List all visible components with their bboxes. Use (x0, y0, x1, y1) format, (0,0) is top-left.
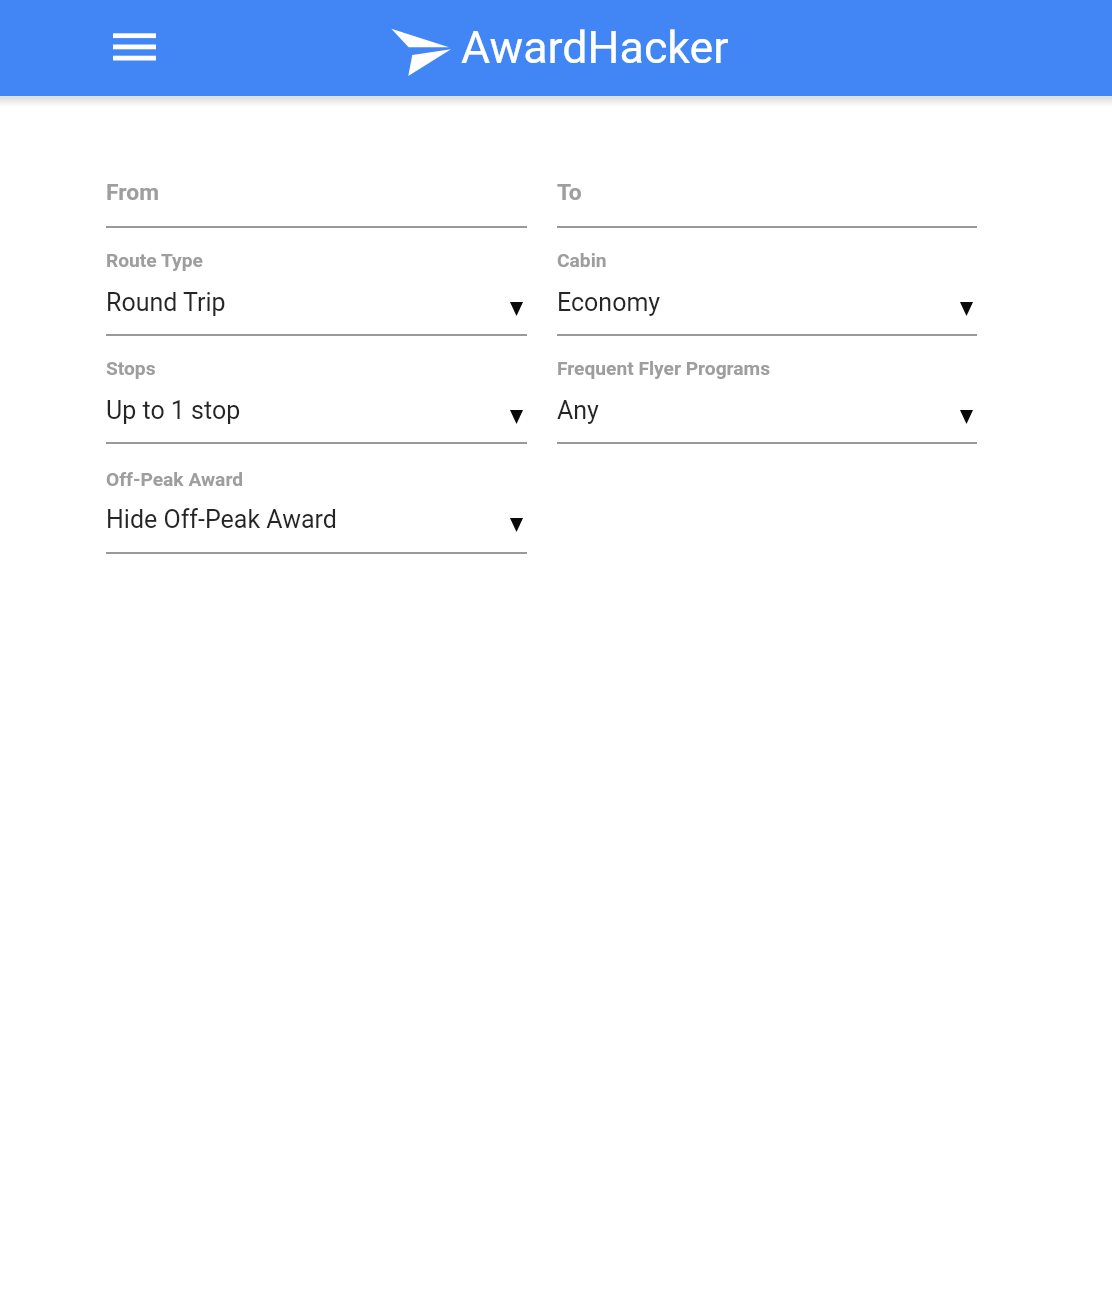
other: Open Cabin options (960, 302, 973, 316)
staticText: Round Trip (106, 288, 226, 317)
button[interactable]: Cabin (557, 228, 977, 336)
other: AwardHacker logo (391, 28, 451, 76)
staticText: Hide Off-Peak Award (106, 505, 337, 534)
staticText: AwardHacker (461, 21, 729, 74)
staticText: To (557, 179, 582, 206)
button[interactable]: Stops (106, 336, 527, 444)
staticText: From (106, 179, 159, 206)
staticText: Any (557, 396, 599, 425)
other: Open Off-Peak Award options (510, 518, 523, 532)
button[interactable]: Route Type (106, 228, 527, 336)
other: Open Frequent Flyer Programs options (960, 410, 973, 424)
button[interactable]: Frequent Flyer Programs (557, 336, 977, 444)
button[interactable]: Open navigation menu (93, 13, 173, 82)
other: Open Stops options (510, 410, 523, 424)
button[interactable]: To (557, 120, 977, 228)
other: Open Route Type options (510, 302, 523, 316)
button[interactable]: From (106, 120, 527, 228)
staticText: Cabin (557, 249, 607, 272)
staticText: Frequent Flyer Programs (557, 357, 771, 380)
staticText: Off-Peak Award (106, 468, 244, 491)
staticText: Up to 1 stop (106, 396, 241, 425)
staticText: Route Type (106, 249, 203, 272)
button[interactable]: Off-Peak Award (106, 444, 527, 554)
staticText: Economy (557, 288, 661, 317)
staticText: Stops (106, 357, 156, 380)
